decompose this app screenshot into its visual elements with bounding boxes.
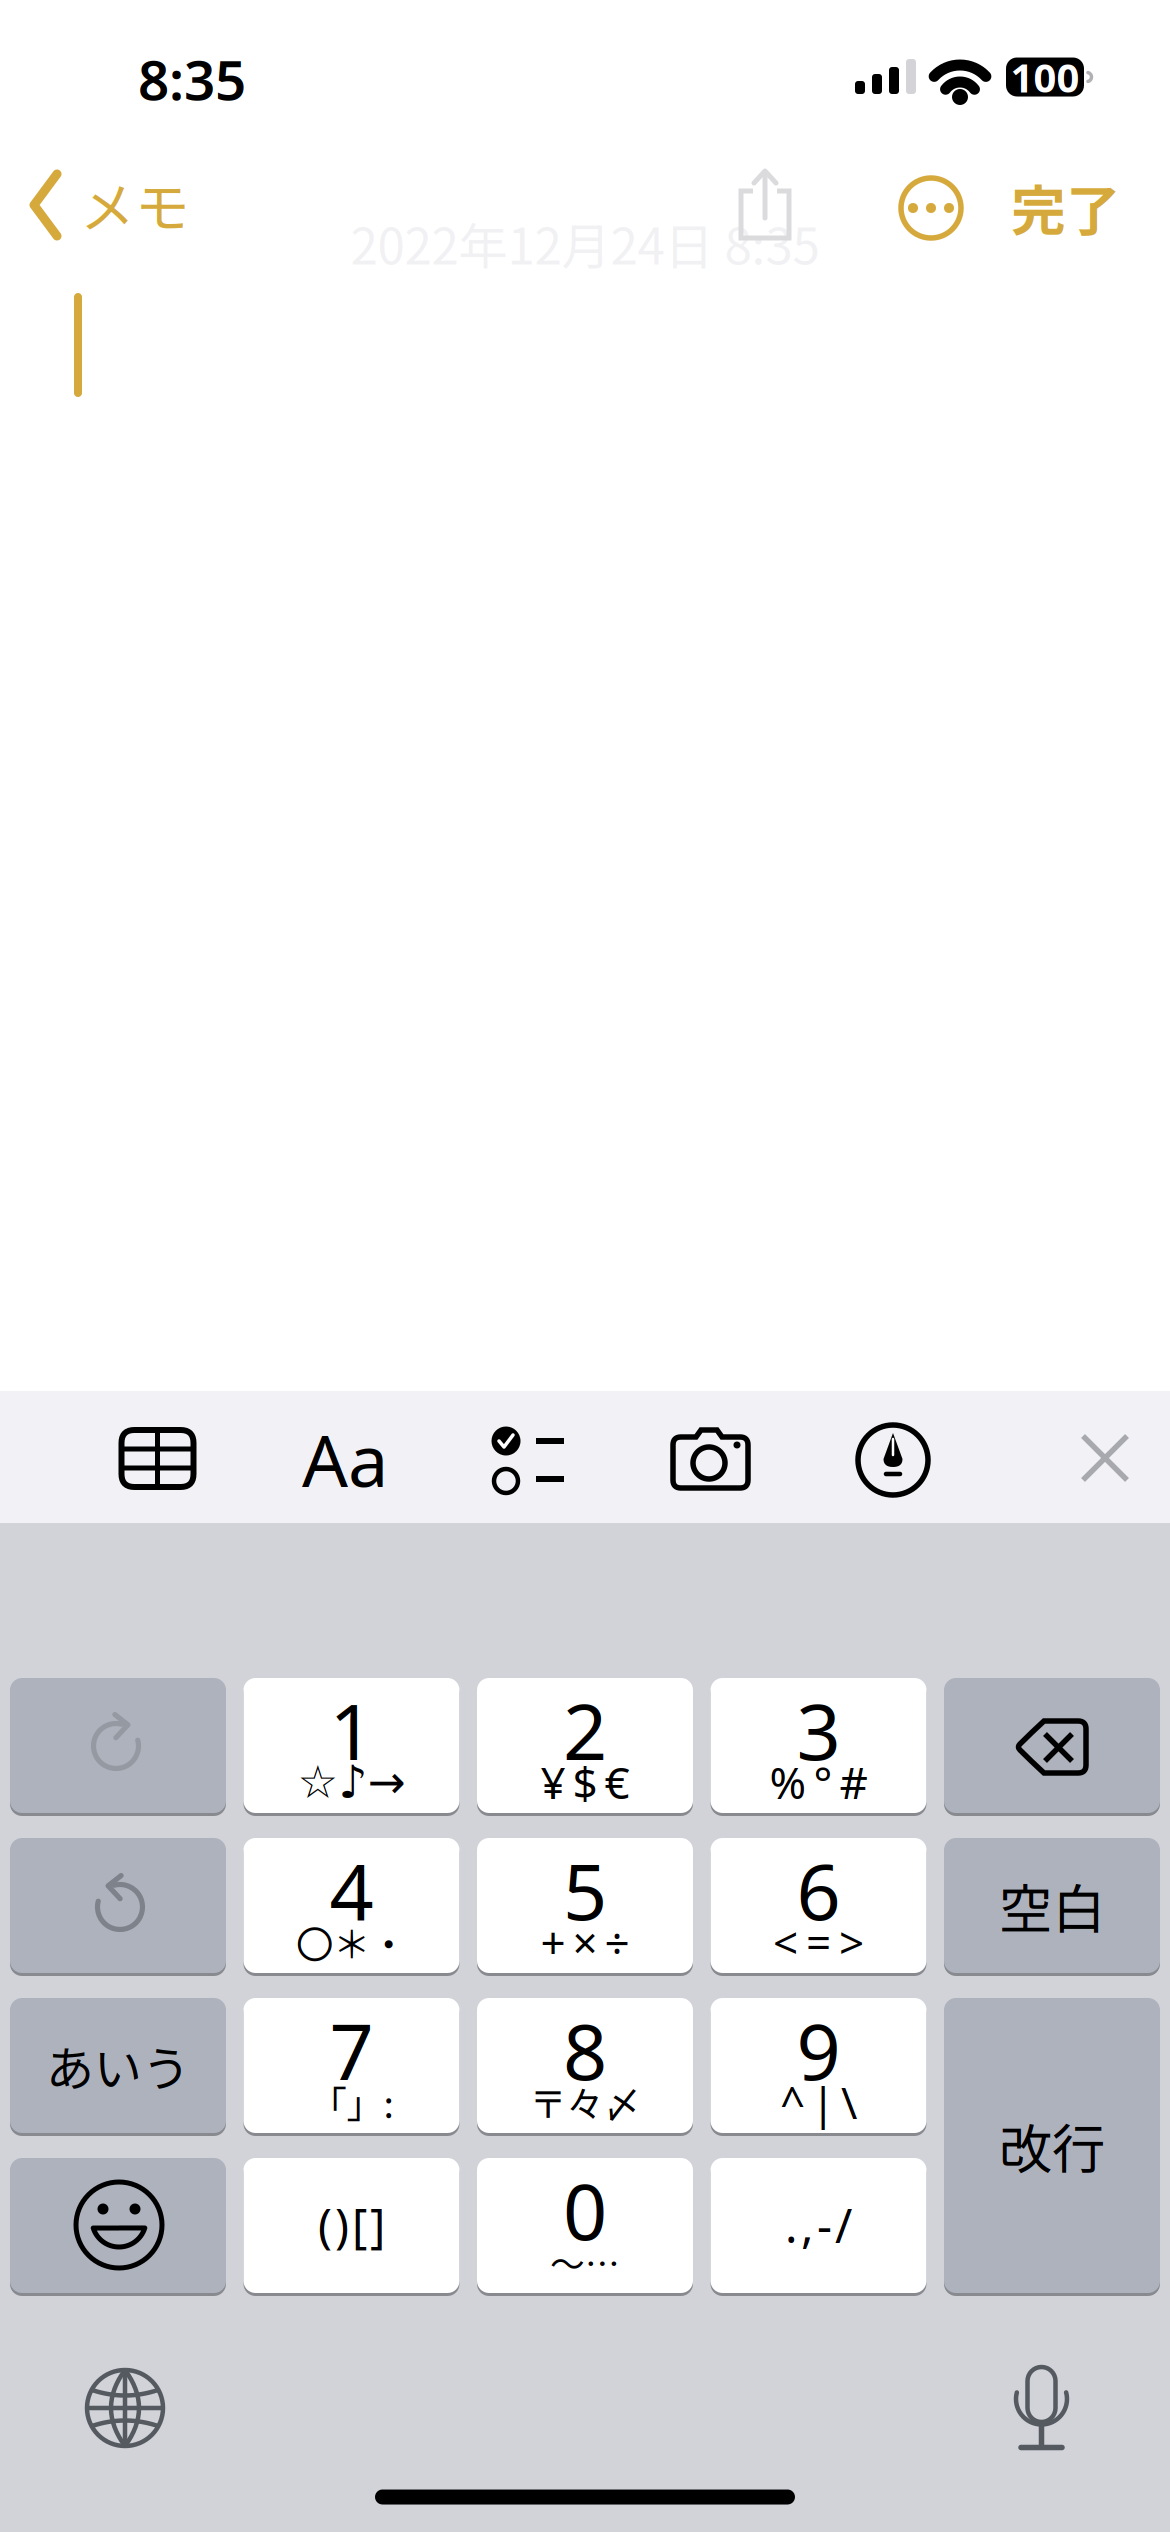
- button[interactable]: 完了: [991, 157, 1141, 257]
- staticText: ¥$€: [540, 1753, 629, 1811]
- staticText: 完了: [1011, 167, 1121, 247]
- staticText: 8: [563, 1999, 607, 2101]
- button[interactable]: Emoji: [10, 2158, 226, 2293]
- button[interactable]: Return: [944, 1998, 1160, 2293]
- staticText: 空白: [999, 1867, 1105, 1944]
- staticText: 8:35: [138, 43, 246, 115]
- button[interactable]: Insert table: [107, 1408, 207, 1508]
- button[interactable]: 6: [710, 1838, 926, 1973]
- button[interactable]: 3: [710, 1678, 926, 1813]
- staticText: 〒々〆: [529, 2075, 640, 2129]
- staticText: 「」:: [309, 2075, 393, 2129]
- staticText: 5: [563, 1839, 607, 1941]
- button[interactable]: 8: [477, 1998, 693, 2133]
- staticText: 2: [563, 1679, 607, 1781]
- button[interactable]: 0: [477, 2158, 693, 2293]
- button[interactable]: 1: [243, 1678, 459, 1813]
- staticText: +×÷: [540, 1913, 629, 1971]
- staticText: 0: [563, 2159, 607, 2261]
- staticText: 7: [329, 1999, 373, 2101]
- button[interactable]: 7: [243, 1998, 459, 2133]
- staticText: 改行: [999, 2107, 1105, 2184]
- button[interactable]: Delete: [944, 1678, 1160, 1813]
- staticText: 9: [796, 1999, 840, 2101]
- staticText: ^|\: [780, 2073, 857, 2131]
- button[interactable]: 5: [477, 1838, 693, 1973]
- button[interactable]: Format: [290, 1409, 400, 1509]
- button[interactable]: Markup: [843, 1409, 943, 1509]
- staticText: メモ: [80, 164, 190, 244]
- button[interactable]: Dismiss keyboard: [1060, 1408, 1150, 1508]
- button[interactable]: ()[]: [243, 2158, 459, 2293]
- button[interactable]: Camera: [655, 1408, 765, 1508]
- button[interactable]: .,-/: [710, 2158, 926, 2293]
- staticText: 〇＊・: [296, 1915, 407, 1969]
- button[interactable]: Redo: [10, 1678, 226, 1813]
- button[interactable]: 2: [477, 1678, 693, 1813]
- button[interactable]: Dictation: [985, 2353, 1095, 2463]
- staticText: 3: [796, 1679, 840, 1781]
- button[interactable]: 4: [243, 1838, 459, 1973]
- staticText: 4: [329, 1839, 373, 1941]
- staticText: 100: [1010, 50, 1079, 103]
- button[interactable]: Next keyboard: [70, 2353, 180, 2463]
- staticText: 1: [329, 1679, 373, 1781]
- button[interactable]: Share: [725, 160, 805, 250]
- staticText: %°#: [769, 1753, 867, 1811]
- staticText: あいう: [46, 2031, 190, 2100]
- staticText: .,-/: [785, 2194, 852, 2256]
- staticText: Aa: [302, 1411, 388, 1507]
- button[interactable]: Undo: [10, 1838, 226, 1973]
- button[interactable]: Checklist: [478, 1408, 578, 1508]
- button[interactable]: メモ: [8, 155, 228, 255]
- staticText: 〜…: [550, 2237, 620, 2287]
- button[interactable]: More: [891, 160, 971, 250]
- staticText: ()[]: [318, 2194, 385, 2256]
- button[interactable]: 9: [710, 1998, 926, 2133]
- button[interactable]: Space: [944, 1838, 1160, 1973]
- staticText: ☆♪→: [297, 1756, 405, 1808]
- button[interactable]: Kana: [10, 1998, 226, 2133]
- staticText: <=>: [773, 1913, 864, 1971]
- staticText: 6: [796, 1839, 840, 1941]
- staticText: 2022年12月24日 8:35: [350, 207, 819, 279]
